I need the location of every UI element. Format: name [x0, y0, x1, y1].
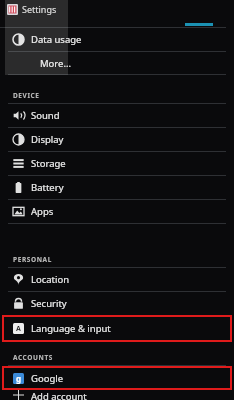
- staticText: g: [16, 373, 22, 384]
- staticText: Battery: [31, 181, 64, 194]
- staticText: Google: [31, 372, 64, 385]
- staticText: Display: [31, 133, 64, 146]
- button[interactable]: Sound: [0, 104, 234, 128]
- button[interactable]: Apps: [0, 200, 234, 224]
- staticText: Settings: [22, 3, 57, 15]
- staticText: Apps: [31, 205, 54, 218]
- staticText: ACCOUNTS: [13, 353, 53, 362]
- staticText: Data usage: [31, 33, 82, 46]
- staticText: Location: [31, 273, 70, 286]
- staticText: Language & input: [31, 322, 111, 335]
- button[interactable]: A: [2, 315, 232, 342]
- other: Settings: [7, 3, 57, 15]
- button[interactable]: More...: [0, 52, 234, 74]
- button[interactable]: Add account: [0, 390, 234, 400]
- button[interactable]: Security: [0, 292, 234, 315]
- button[interactable]: Display: [0, 128, 234, 152]
- staticText: Security: [31, 297, 67, 310]
- button[interactable]: Battery: [0, 176, 234, 200]
- staticText: Storage: [31, 157, 66, 170]
- staticText: DEVICE: [13, 91, 40, 100]
- button[interactable]: Storage: [0, 152, 234, 176]
- staticText: Sound: [31, 109, 60, 122]
- staticText: A: [16, 324, 21, 334]
- staticText: PERSONAL: [13, 255, 52, 264]
- button[interactable]: Data usage: [0, 28, 234, 52]
- button[interactable]: Location: [0, 268, 234, 292]
- staticText: Add account: [31, 390, 87, 400]
- button[interactable]: g: [2, 366, 232, 390]
- staticText: More...: [40, 57, 72, 70]
